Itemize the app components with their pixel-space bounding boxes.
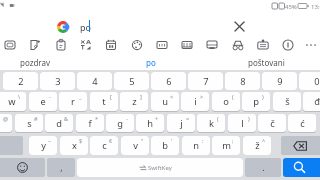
button[interactable]: Incognito [227, 35, 249, 55]
staticText: " [141, 137, 144, 144]
button[interactable]: Backspace [281, 136, 320, 155]
staticText: s [27, 117, 32, 130]
button[interactable]: Settings [277, 35, 299, 55]
button[interactable]: t [90, 92, 118, 111]
button[interactable]: v [121, 136, 149, 155]
button[interactable]: k [197, 114, 225, 132]
button[interactable]: ć [288, 114, 316, 132]
button[interactable]: j [167, 114, 195, 132]
staticText: 8 [240, 75, 246, 88]
staticText: e [40, 95, 46, 108]
staticText: r [71, 95, 75, 108]
staticText: u [162, 95, 168, 108]
staticText: - [49, 93, 51, 100]
button[interactable]: w [0, 92, 26, 111]
staticText: $ [79, 137, 83, 144]
staticText: 6 [166, 75, 172, 88]
button[interactable]: đ [303, 92, 320, 111]
button[interactable]: š [273, 92, 301, 111]
button[interactable]: One handed [176, 35, 198, 55]
button[interactable]: d [45, 114, 73, 132]
button[interactable]: r [59, 92, 87, 111]
button[interactable]: 4 [77, 72, 112, 90]
button[interactable]: e [29, 92, 57, 111]
button[interactable]: Stickers [24, 35, 46, 55]
staticText: 13:0 [311, 3, 320, 11]
button[interactable]: Calendar [100, 35, 122, 55]
staticText: 2 [18, 75, 24, 88]
button[interactable]: Resize [151, 35, 173, 55]
staticText: f [88, 117, 92, 130]
button[interactable]: n [182, 136, 210, 155]
button[interactable]: o [212, 92, 240, 111]
staticText: k [209, 117, 214, 130]
button[interactable]: Clear search [230, 17, 248, 35]
staticText: c [102, 139, 107, 152]
button[interactable]: Themes [126, 35, 148, 55]
staticText: ( [217, 115, 219, 122]
button[interactable]: 3 [40, 72, 75, 90]
button[interactable]: 7 [188, 72, 223, 90]
button[interactable]: Emoji [0, 158, 45, 177]
staticText: đ [314, 95, 320, 108]
button[interactable]: More options [301, 35, 320, 55]
button[interactable]: č [258, 114, 286, 132]
button[interactable]: poštovani [210, 55, 320, 69]
button[interactable]: GIF [0, 35, 21, 55]
button[interactable]: 9 [262, 72, 297, 90]
button[interactable]: News [252, 35, 274, 55]
staticText: ^ [262, 137, 266, 144]
staticText: ž [255, 139, 260, 152]
button[interactable]: f [76, 114, 104, 132]
staticText: = [186, 115, 190, 122]
staticText: n [193, 139, 199, 152]
button[interactable]: Search [283, 158, 320, 177]
staticText: > [200, 93, 204, 100]
button[interactable]: 2 [3, 72, 38, 90]
button[interactable]: 6 [151, 72, 186, 90]
button[interactable]: s [15, 114, 43, 132]
staticText: ; [232, 137, 234, 144]
button[interactable]: Translate [75, 35, 97, 55]
staticText: * [95, 115, 99, 122]
staticText: 9 [277, 75, 283, 88]
button[interactable]: Layout [201, 35, 223, 55]
staticText: y [41, 139, 46, 152]
staticText: < [170, 93, 174, 100]
staticText: x [72, 139, 77, 152]
button[interactable]: u [151, 92, 179, 111]
staticText: ć [300, 117, 305, 130]
button[interactable]: x [60, 136, 88, 155]
button[interactable]: 8 [225, 72, 260, 90]
button[interactable]: m [212, 136, 240, 155]
button[interactable]: 0 [299, 72, 320, 90]
staticText: [ [110, 93, 112, 100]
staticText: w [8, 95, 16, 108]
staticText: ' [171, 137, 173, 144]
button[interactable]: pozdrav [0, 55, 91, 69]
button[interactable]: Clipboard [50, 35, 72, 55]
staticText: o [223, 95, 229, 108]
button[interactable]: c [90, 136, 118, 155]
button[interactable]: ž [243, 136, 271, 155]
button[interactable]: y [29, 136, 57, 155]
button[interactable]: Period [245, 158, 281, 177]
button[interactable]: l [228, 114, 256, 132]
button[interactable]: z [120, 92, 148, 111]
button[interactable]: Space [77, 158, 243, 177]
staticText: po [80, 21, 91, 33]
staticText: + [155, 115, 159, 122]
button[interactable]: @ [0, 114, 12, 132]
staticText: t [102, 95, 106, 108]
button[interactable]: h [136, 114, 164, 132]
staticText: i [194, 95, 197, 108]
button[interactable]: 5 [114, 72, 149, 90]
button[interactable]: po [95, 55, 207, 69]
button[interactable]: p [242, 92, 270, 111]
button[interactable]: b [151, 136, 179, 155]
button[interactable]: Comma [47, 158, 75, 177]
staticText: d [56, 117, 62, 130]
button[interactable]: g [106, 114, 134, 132]
button[interactable]: i [181, 92, 209, 111]
